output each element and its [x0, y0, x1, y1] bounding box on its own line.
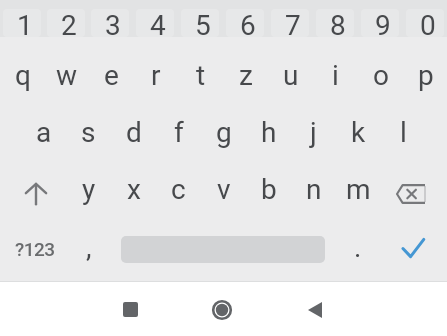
staticText: c [171, 173, 186, 206]
button[interactable]: k [335, 106, 380, 163]
button[interactable]: t [177, 49, 222, 106]
staticText: 0 [420, 9, 436, 42]
button[interactable]: 4 [132, 0, 177, 37]
staticText: a [36, 116, 52, 149]
button[interactable] [380, 220, 447, 277]
staticText: n [306, 173, 322, 206]
staticText: u [283, 59, 299, 92]
button[interactable]: p [402, 49, 447, 106]
button[interactable] [204, 292, 239, 327]
staticText: g [216, 116, 232, 149]
staticText: 7 [285, 9, 301, 42]
button[interactable] [113, 292, 148, 327]
button[interactable]: y [66, 163, 110, 220]
button[interactable]: j [290, 106, 335, 163]
button[interactable]: b [245, 163, 290, 220]
button[interactable]: h [245, 106, 290, 163]
button[interactable] [0, 163, 66, 220]
staticText: 3 [105, 9, 121, 42]
button[interactable]: d [110, 106, 155, 163]
staticText: o [373, 59, 389, 92]
button[interactable] [297, 292, 332, 327]
button[interactable]: w [44, 49, 88, 106]
staticText: h [261, 116, 277, 149]
button[interactable]: i [312, 49, 357, 106]
staticText: t [196, 59, 206, 92]
button[interactable]: a [21, 106, 65, 163]
button[interactable]: n [290, 163, 335, 220]
staticText: y [82, 173, 96, 206]
staticText: , [86, 231, 92, 264]
button[interactable] [380, 163, 447, 220]
button[interactable]: 9 [357, 0, 402, 37]
staticText: d [126, 116, 142, 149]
staticText: z [239, 59, 253, 92]
button[interactable]: 0 [402, 0, 447, 37]
staticText: b [261, 173, 277, 206]
button[interactable]: c [155, 163, 200, 220]
button[interactable]: g [200, 106, 245, 163]
staticText: 5 [195, 9, 211, 42]
button[interactable]: q [0, 49, 44, 106]
button[interactable]: 2 [44, 0, 88, 37]
staticText: . [354, 231, 362, 264]
button[interactable]: ?123 [0, 220, 66, 277]
staticText: w [56, 59, 78, 92]
button[interactable]: l [380, 106, 425, 163]
staticText: 6 [240, 9, 256, 42]
staticText: 9 [375, 9, 391, 42]
staticText: 4 [150, 9, 166, 42]
staticText: e [104, 59, 119, 92]
staticText: l [400, 116, 407, 149]
button[interactable]: o [357, 49, 402, 106]
staticText: ?123 [15, 238, 55, 260]
button[interactable]: e [88, 49, 132, 106]
staticText: 2 [61, 9, 77, 42]
button[interactable]: v [200, 163, 245, 220]
button[interactable]: 5 [177, 0, 222, 37]
staticText: x [127, 173, 141, 206]
staticText: p [418, 59, 434, 92]
button[interactable]: r [132, 49, 177, 106]
button[interactable]: 8 [312, 0, 357, 37]
staticText: k [351, 116, 366, 149]
button[interactable]: , [66, 220, 111, 277]
staticText: r [151, 59, 161, 92]
staticText: f [174, 116, 184, 149]
staticText: 8 [330, 9, 346, 42]
staticText: m [346, 173, 371, 206]
staticText: j [310, 116, 317, 149]
button[interactable]: 1 [0, 0, 44, 37]
button[interactable]: u [267, 49, 312, 106]
staticText: v [217, 173, 231, 206]
staticText: 1 [17, 9, 33, 42]
button[interactable]: 7 [267, 0, 312, 37]
staticText: s [81, 116, 96, 149]
button[interactable]: f [155, 106, 200, 163]
staticText: q [15, 59, 31, 92]
staticText: i [332, 59, 339, 92]
button[interactable]: . [335, 220, 380, 277]
button[interactable]: z [222, 49, 267, 106]
button[interactable]: 6 [222, 0, 267, 37]
button[interactable]: x [110, 163, 155, 220]
button[interactable]: m [335, 163, 380, 220]
button[interactable]: 3 [88, 0, 132, 37]
button[interactable]: s [65, 106, 110, 163]
